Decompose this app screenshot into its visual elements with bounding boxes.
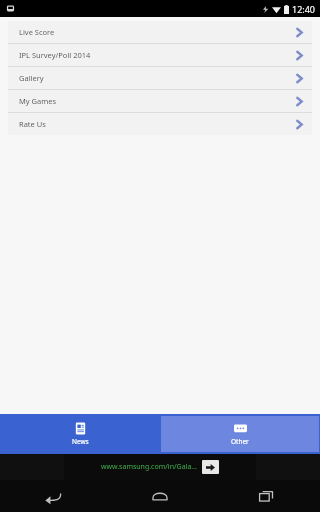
staticText: Rate Us: [19, 119, 296, 129]
button[interactable]: Gallery: [8, 67, 312, 89]
button[interactable]: Back: [0, 480, 106, 512]
button[interactable]: My Games: [8, 90, 312, 112]
staticText: 12:40: [292, 3, 316, 15]
staticText: My Games: [19, 96, 296, 106]
button[interactable]: Home: [106, 480, 213, 512]
button[interactable]: www.samsung.com/in/Gala...: [64, 454, 256, 480]
button[interactable]: News: [0, 414, 160, 454]
button[interactable]: IPL Survey/Poll 2014: [8, 44, 312, 66]
staticText: News: [72, 437, 89, 446]
button[interactable]: Live Score: [8, 21, 312, 43]
button[interactable]: Recent apps: [213, 480, 320, 512]
staticText: Other: [231, 437, 249, 446]
button[interactable]: Other: [161, 416, 319, 452]
staticText: Gallery: [19, 73, 296, 83]
staticText: Live Score: [19, 27, 296, 37]
other: Open advertisement: [202, 460, 219, 474]
staticText: IPL Survey/Poll 2014: [19, 50, 296, 60]
staticText: www.samsung.com/in/Gala...: [101, 462, 197, 472]
button[interactable]: Rate Us: [8, 113, 312, 135]
